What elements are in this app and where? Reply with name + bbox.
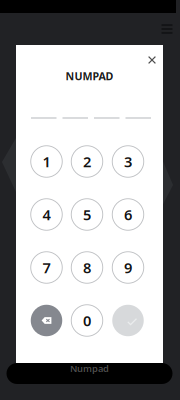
button[interactable]: 6 <box>112 199 144 230</box>
staticText: 2 <box>83 152 91 171</box>
button[interactable]: 4 <box>31 199 62 230</box>
button[interactable]: 9 <box>112 252 144 283</box>
staticText: 7 <box>42 258 50 277</box>
staticText: 4 <box>42 205 50 224</box>
button[interactable]: Confirm <box>112 305 144 336</box>
button[interactable]: Delete <box>31 305 62 336</box>
button[interactable]: 7 <box>31 252 62 283</box>
button[interactable]: 8 <box>71 252 103 283</box>
button[interactable]: 1 <box>31 146 62 177</box>
button[interactable]: 0 <box>71 305 103 336</box>
staticText: Numpad <box>70 362 109 375</box>
button[interactable]: Close <box>144 52 160 68</box>
staticText: 5 <box>83 205 91 224</box>
staticText: 8 <box>83 258 91 277</box>
button[interactable]: 2 <box>71 146 103 177</box>
button[interactable]: 3 <box>112 146 144 177</box>
staticText: 6 <box>124 205 132 224</box>
button[interactable]: Menu <box>161 24 172 34</box>
staticText: 3 <box>124 152 132 171</box>
button[interactable]: 5 <box>71 199 103 230</box>
staticText: 1 <box>42 152 50 171</box>
staticText: NUMPAD <box>65 69 113 83</box>
staticText: 0 <box>83 311 91 330</box>
staticText: 9 <box>124 258 132 277</box>
